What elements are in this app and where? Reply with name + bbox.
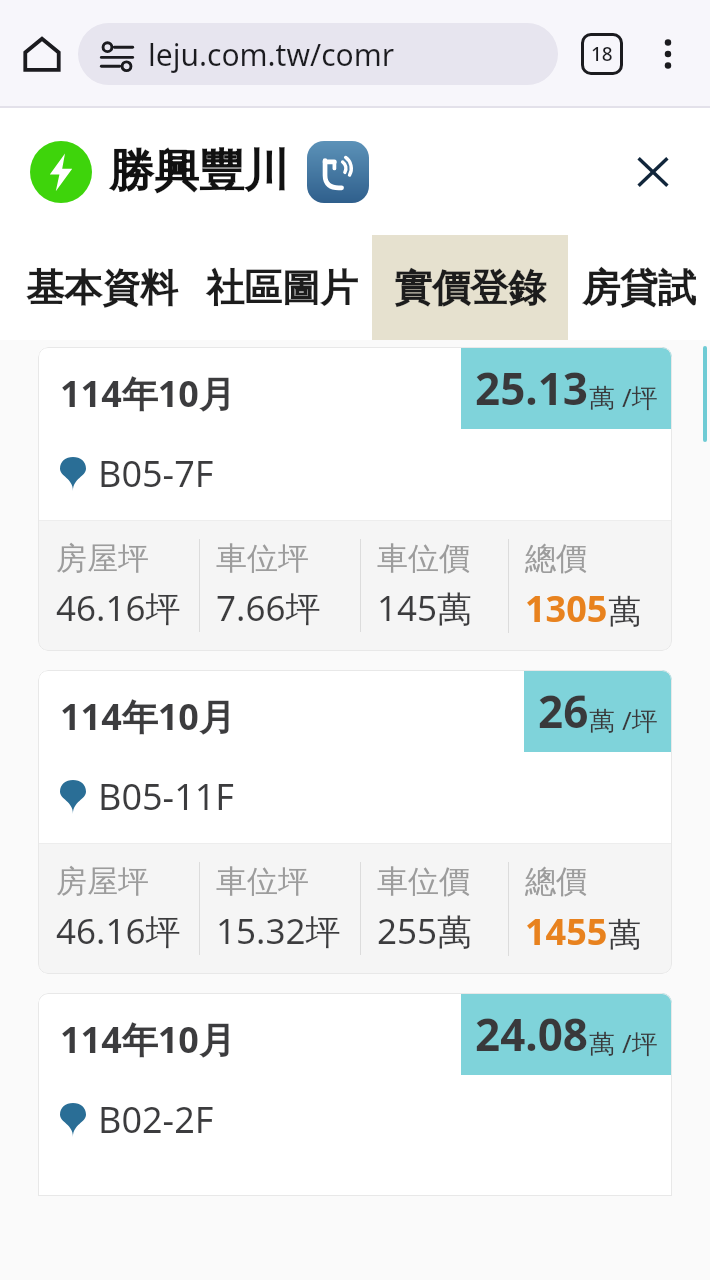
staticText: 萬 xyxy=(589,705,615,738)
button[interactable]: 25.13 xyxy=(38,347,672,651)
button[interactable]: Home xyxy=(14,26,70,82)
staticText: 車位坪 xyxy=(216,862,309,901)
staticText: 總價 xyxy=(525,539,587,578)
staticText: 總價 xyxy=(525,862,587,901)
staticText: 基本資料 xyxy=(26,264,178,312)
staticText: 114年10月 xyxy=(60,369,235,418)
staticText: leju.com.tw/comr xyxy=(148,34,395,75)
staticText: 114年10月 xyxy=(60,692,235,741)
staticText: 萬 xyxy=(589,1028,615,1061)
staticText: /坪 xyxy=(622,379,658,415)
staticText: 114年10月 xyxy=(60,1015,235,1064)
button[interactable]: Call xyxy=(307,141,369,203)
button[interactable]: 房貸試算 xyxy=(568,235,710,340)
staticText: 社區圖片 xyxy=(206,264,358,312)
button[interactable]: 24.08 xyxy=(38,993,672,1196)
button[interactable]: 社區圖片 xyxy=(192,235,372,340)
staticText: 萬 xyxy=(589,382,615,415)
staticText: 7.66坪 xyxy=(216,584,321,632)
staticText: 26 xyxy=(538,681,589,741)
button[interactable]: 基本資料 xyxy=(0,235,192,340)
staticText: 車位價 xyxy=(377,539,470,578)
staticText: 46.16坪 xyxy=(56,584,181,632)
staticText: B02-2F xyxy=(98,1095,214,1144)
staticText: 勝興豐川 xyxy=(109,143,289,200)
staticText: /坪 xyxy=(622,1025,658,1061)
staticText: B05-11F xyxy=(98,772,235,821)
staticText: 房屋坪 xyxy=(56,539,149,578)
button[interactable]: 實價登錄 xyxy=(372,235,568,340)
staticText: 255萬 xyxy=(377,907,473,955)
staticText: B05-7F xyxy=(98,449,214,498)
staticText: 24.08 xyxy=(475,1004,589,1064)
button[interactable]: Logo xyxy=(30,141,92,203)
staticText: 1455 xyxy=(525,907,608,956)
button[interactable]: Tabs: 18 xyxy=(572,24,632,84)
staticText: /坪 xyxy=(622,702,658,738)
staticText: 25.13 xyxy=(475,358,589,418)
button[interactable]: 26 xyxy=(38,670,672,974)
staticText: 實價登錄 xyxy=(394,264,546,312)
staticText: 房屋坪 xyxy=(56,862,149,901)
button[interactable]: leju.com.tw/comr xyxy=(78,23,558,85)
staticText: 萬 xyxy=(608,591,641,633)
staticText: 車位價 xyxy=(377,862,470,901)
staticText: 46.16坪 xyxy=(56,907,181,955)
staticText: 房貸試算 xyxy=(582,264,696,312)
button[interactable]: More options xyxy=(640,26,696,82)
staticText: 145萬 xyxy=(377,584,473,632)
staticText: 15.32坪 xyxy=(216,907,341,955)
staticText: 1305 xyxy=(525,584,608,633)
staticText: 萬 xyxy=(608,914,641,956)
staticText: 車位坪 xyxy=(216,539,309,578)
button[interactable]: Close xyxy=(622,141,684,203)
staticText: 18 xyxy=(591,41,613,67)
